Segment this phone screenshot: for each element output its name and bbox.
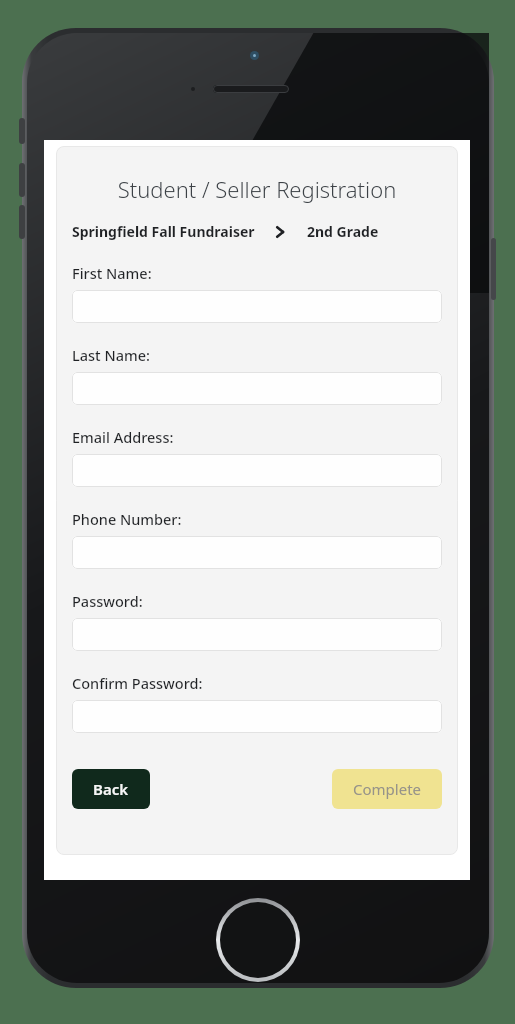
staticText: Complete (353, 779, 422, 799)
button[interactable] (72, 372, 442, 405)
staticText: Confirm Password: (72, 673, 203, 693)
button[interactable] (72, 700, 442, 733)
button[interactable]: Back (72, 769, 150, 809)
staticText: Springfield Fall Fundraiser (72, 222, 255, 241)
staticText: 2nd Grade (307, 222, 379, 241)
staticText: Back (93, 779, 129, 799)
button[interactable] (72, 618, 442, 651)
staticText: First Name: (72, 263, 152, 283)
button[interactable]: Complete (332, 769, 442, 809)
staticText: Email Address: (72, 427, 174, 447)
button[interactable] (72, 536, 442, 569)
button[interactable] (72, 454, 442, 487)
button[interactable] (72, 290, 442, 323)
staticText: Last Name: (72, 345, 150, 365)
staticText: Password: (72, 591, 143, 611)
other: Breadcrumb separator (273, 225, 287, 239)
staticText: Phone Number: (72, 509, 182, 529)
button[interactable]: Springfield Fall Fundraiser (72, 222, 442, 241)
staticText: Student / Seller Registration (56, 174, 458, 204)
